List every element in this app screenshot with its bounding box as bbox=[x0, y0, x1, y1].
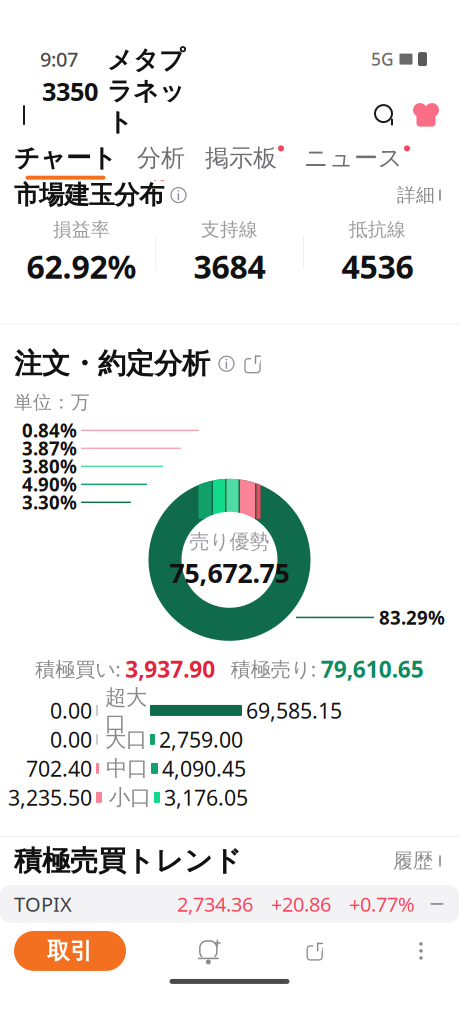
button[interactable]: 掲示板 bbox=[195, 143, 294, 179]
button[interactable]: チャート bbox=[0, 142, 127, 180]
button[interactable]: お気に入り bbox=[405, 92, 447, 138]
staticText: 3,176.05 bbox=[164, 783, 248, 812]
button[interactable]: 戻る bbox=[0, 90, 42, 140]
staticText: 積極売り: bbox=[231, 656, 321, 682]
staticText: 2,734.36 bbox=[177, 891, 253, 917]
staticText: 注文・約定分析 bbox=[14, 346, 210, 381]
staticText: 日中 bbox=[25, 892, 65, 916]
staticText: 中口 bbox=[106, 755, 148, 781]
staticText: 2,759.00 bbox=[159, 725, 243, 754]
staticText: 月 bbox=[209, 892, 229, 916]
staticText: 702.40 bbox=[26, 754, 92, 783]
staticText: 62.92% bbox=[26, 245, 136, 287]
staticText: チャート bbox=[14, 142, 117, 174]
staticText: 履歴 bbox=[393, 849, 433, 873]
staticText: 3684 bbox=[193, 245, 265, 287]
staticText: メタプラネット bbox=[107, 44, 185, 138]
staticText: 3,937.90 bbox=[125, 654, 215, 684]
staticText: 積極買い: bbox=[35, 656, 125, 682]
staticText: 3.30% bbox=[22, 490, 77, 515]
staticText: 4,390 bbox=[42, 151, 87, 174]
staticText: +20.86 bbox=[271, 891, 331, 917]
staticText: 小口 bbox=[109, 784, 151, 810]
staticText: 69,585.15 bbox=[246, 696, 342, 725]
staticText: 3.87% bbox=[22, 436, 77, 461]
button[interactable]: ニュース bbox=[294, 143, 420, 179]
staticText: 単位：万 bbox=[14, 391, 90, 414]
staticText: 取引 bbox=[47, 937, 93, 965]
button[interactable]: TOPIX bbox=[0, 885, 459, 923]
staticText: 超大口 bbox=[105, 684, 147, 737]
staticText: +155 bbox=[107, 151, 147, 174]
staticText: ニュース bbox=[304, 143, 403, 173]
staticText: 市場建玉分布 bbox=[14, 179, 164, 211]
staticText: +0.77% bbox=[349, 891, 415, 917]
staticText: 3.80% bbox=[22, 454, 77, 479]
button[interactable]: その他 bbox=[397, 929, 445, 973]
button[interactable]: 共有 bbox=[235, 351, 262, 377]
button[interactable]: 履歴 bbox=[393, 849, 445, 873]
staticText: 0.84% bbox=[22, 418, 77, 443]
staticText: 抵抗線 bbox=[349, 218, 406, 241]
button[interactable]: 共有 bbox=[291, 929, 339, 973]
staticText: +3.66% bbox=[151, 140, 196, 186]
staticText: ↑ bbox=[91, 154, 103, 171]
staticText: 分析 bbox=[137, 143, 185, 173]
staticText: 大口 bbox=[105, 726, 147, 752]
staticText: 83.29% bbox=[379, 605, 445, 630]
staticText: 0.00 bbox=[50, 725, 92, 754]
staticText: 3,235.50 bbox=[8, 783, 92, 812]
staticText: 損益率 bbox=[53, 218, 110, 241]
button[interactable]: 検索 bbox=[365, 92, 405, 138]
staticText: 掲示板 bbox=[205, 143, 277, 173]
staticText: i bbox=[224, 355, 228, 372]
staticText: 75,672.75 bbox=[169, 555, 289, 590]
staticText: 0.00 bbox=[50, 696, 92, 725]
staticText: 積極売買トレンド bbox=[14, 844, 242, 878]
staticText: 5G bbox=[371, 48, 394, 71]
staticText: 79,610.65 bbox=[321, 654, 424, 684]
staticText: 4.90% bbox=[22, 472, 77, 497]
staticText: 詳細 bbox=[397, 184, 435, 206]
staticText: TOPIX bbox=[14, 891, 72, 917]
staticText: 9:07 bbox=[40, 46, 78, 72]
button[interactable]: 取引 bbox=[14, 931, 126, 971]
staticText: 売り優勢 bbox=[189, 529, 269, 554]
staticText: 4,090.45 bbox=[162, 754, 246, 783]
button[interactable]: アラート bbox=[184, 929, 232, 973]
staticText: 4536 bbox=[341, 245, 413, 287]
staticText: 支持線 bbox=[201, 218, 258, 241]
button[interactable]: 分析 bbox=[127, 143, 195, 179]
staticText: 3350 bbox=[42, 74, 98, 108]
staticText: i bbox=[176, 186, 180, 204]
